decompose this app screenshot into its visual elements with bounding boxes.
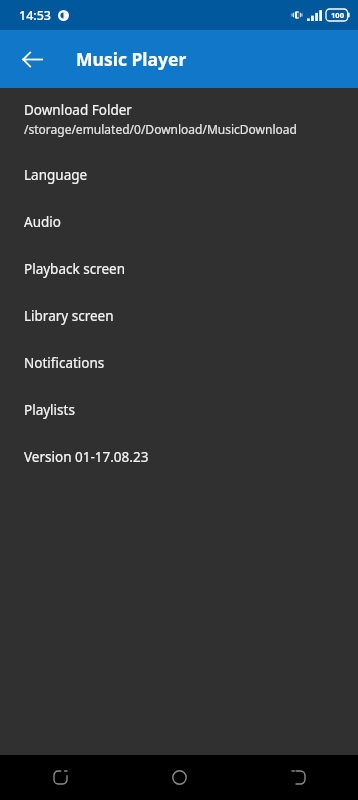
button[interactable]: Language (0, 157, 358, 204)
staticText: Audio (24, 213, 61, 231)
staticText: 100 (331, 10, 344, 20)
staticText: Playlists (24, 401, 75, 419)
staticText: /storage/emulated/0/Download/MusicDownlo… (24, 121, 297, 137)
staticText: Notifications (24, 354, 105, 372)
button[interactable]: Back (270, 755, 326, 800)
button[interactable]: Playlists (0, 392, 358, 439)
staticText: Version 01-17.08.23 (24, 448, 149, 466)
button[interactable]: Playback screen (0, 251, 358, 298)
button[interactable]: Recents (32, 755, 88, 800)
button[interactable]: Audio (0, 204, 358, 251)
button[interactable]: Library screen (0, 298, 358, 345)
staticText: Playback screen (24, 260, 126, 278)
staticText: Library screen (24, 307, 114, 325)
staticText: Download Folder (24, 101, 132, 119)
staticText: 14:53 (19, 7, 52, 24)
staticText: Music Player (76, 47, 187, 71)
button[interactable]: Notifications (0, 345, 358, 392)
button[interactable]: Version 01-17.08.23 (0, 439, 358, 486)
button[interactable]: Home (151, 755, 207, 800)
staticText: Language (24, 166, 88, 184)
button[interactable]: Download Folder (0, 92, 358, 157)
button[interactable]: Back (10, 37, 54, 81)
